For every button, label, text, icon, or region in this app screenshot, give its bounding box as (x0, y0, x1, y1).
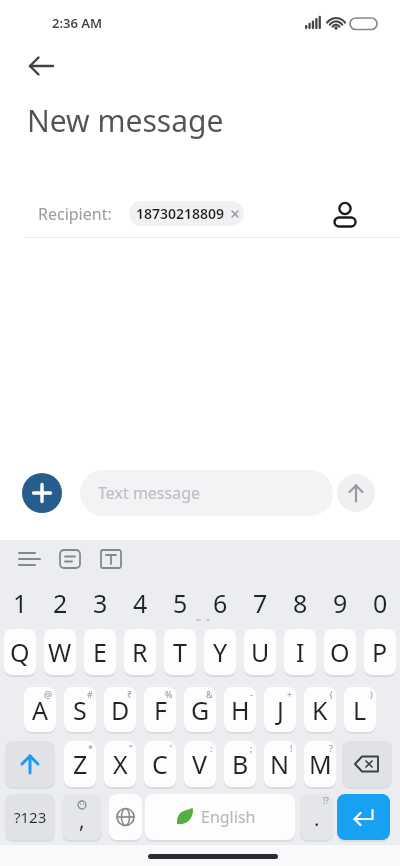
staticText: # (87, 688, 93, 700)
button[interactable] (10, 545, 50, 575)
button[interactable] (97, 545, 129, 575)
button[interactable]: M (304, 741, 336, 787)
button[interactable]: 3 (80, 582, 120, 624)
staticText: Q (10, 635, 30, 669)
staticText: W (48, 635, 72, 669)
staticText: ( (330, 688, 333, 700)
staticText: " (129, 742, 133, 754)
staticText: 2:36 AM (52, 14, 103, 32)
staticText: % (165, 688, 173, 700)
staticText: N (270, 747, 290, 781)
staticText: Text message (98, 482, 201, 504)
button[interactable]: L (344, 687, 376, 732)
staticText: 4 (133, 586, 148, 620)
staticText: S (73, 693, 87, 727)
staticText: ₹ (127, 688, 133, 700)
staticText: H (231, 693, 250, 727)
button[interactable]: O (324, 629, 356, 675)
button[interactable]: 4 (120, 582, 160, 624)
staticText: E (93, 635, 107, 669)
button[interactable] (0, 190, 400, 238)
staticText: New message (27, 100, 224, 141)
staticText: Recipient: (38, 203, 112, 225)
button[interactable]: I (284, 629, 316, 675)
button[interactable]: V (184, 741, 216, 787)
button[interactable]: B (224, 741, 256, 787)
button[interactable]: W (44, 629, 76, 675)
staticText: J (277, 693, 284, 727)
button[interactable]: 2 (40, 582, 80, 624)
button[interactable]: A (24, 687, 56, 732)
staticText: ! (290, 742, 293, 754)
staticText: D (111, 693, 130, 727)
button[interactable]: Text message (80, 470, 333, 516)
button[interactable]: S (64, 687, 96, 732)
button[interactable]: Z (64, 741, 96, 787)
button[interactable] (5, 741, 55, 787)
button[interactable]: H (224, 687, 256, 732)
button[interactable]: E (84, 629, 116, 675)
button[interactable]: D (104, 687, 136, 732)
staticText: & (206, 688, 213, 700)
staticText: 6 (213, 586, 228, 620)
button[interactable]: P (364, 629, 396, 675)
button[interactable]: R (124, 629, 156, 675)
button[interactable]: 18730218809 (129, 201, 244, 226)
button[interactable]: U (244, 629, 276, 675)
button[interactable]: F (144, 687, 176, 732)
staticText: English (201, 806, 256, 828)
button[interactable]: Q (4, 629, 36, 675)
button[interactable]: 0 (360, 582, 400, 624)
button[interactable]: 5 (160, 582, 200, 624)
staticText: : (210, 742, 213, 754)
staticText: ; (250, 742, 253, 754)
button[interactable] (337, 794, 390, 840)
button[interactable]: K (304, 687, 336, 732)
staticText: 7 (253, 586, 268, 620)
staticText: P (372, 635, 388, 669)
staticText: T (173, 635, 187, 669)
staticText: 3 (93, 586, 108, 620)
staticText: ? (329, 742, 333, 754)
staticText: - (250, 688, 253, 700)
button[interactable]: , (62, 794, 102, 840)
staticText: O (330, 635, 350, 669)
button[interactable] (55, 545, 87, 575)
button[interactable]: C (144, 741, 176, 787)
staticText: !? (323, 795, 329, 806)
staticText: 8 (293, 586, 308, 620)
button[interactable]: ?123 (5, 794, 55, 840)
button[interactable]: . (300, 794, 333, 840)
button[interactable] (109, 794, 142, 840)
staticText: . (314, 805, 320, 832)
button[interactable] (328, 196, 364, 232)
button[interactable]: N (264, 741, 296, 787)
button[interactable]: 8 (280, 582, 320, 624)
staticText: @ (44, 688, 53, 700)
staticText: L (353, 693, 367, 727)
staticText: 18730218809 (136, 204, 225, 223)
button[interactable]: 6 (200, 582, 240, 624)
button[interactable]: English (145, 794, 295, 840)
button[interactable]: 1 (0, 582, 40, 624)
staticText: ' (170, 742, 173, 754)
staticText: U (251, 635, 270, 669)
staticText: , (79, 806, 85, 835)
staticText: 0 (373, 586, 388, 620)
button[interactable] (342, 741, 392, 787)
button[interactable]: J (264, 687, 296, 732)
button[interactable]: 7 (240, 582, 280, 624)
button[interactable]: Y (204, 629, 236, 675)
staticText: Y (213, 635, 228, 669)
button[interactable] (16, 48, 60, 84)
button[interactable]: G (184, 687, 216, 732)
staticText: C (152, 747, 168, 781)
button[interactable] (22, 473, 62, 513)
button[interactable]: T (164, 629, 196, 675)
button[interactable]: X (104, 741, 136, 787)
staticText: 9 (333, 586, 348, 620)
staticText: F (154, 693, 167, 727)
staticText: ) (370, 688, 373, 700)
button[interactable] (337, 474, 375, 512)
button[interactable]: 9 (320, 582, 360, 624)
